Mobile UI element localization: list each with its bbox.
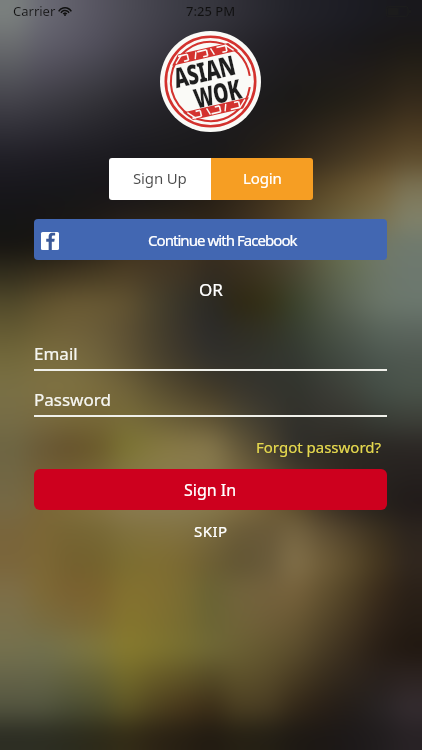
other: Facebook: [41, 232, 59, 250]
staticText: Email: [34, 342, 78, 365]
button[interactable]: Sign Up: [109, 158, 211, 200]
staticText: Forgot password?: [256, 437, 382, 457]
button[interactable]: Sign In: [34, 469, 387, 510]
button[interactable]: Forgot password?: [256, 437, 382, 457]
staticText: ASIAN: [170, 46, 238, 95]
staticText: OR: [199, 278, 223, 301]
staticText: 7:25 PM: [186, 2, 236, 20]
staticText: WOK: [190, 69, 245, 116]
button[interactable]: SKIP: [194, 521, 228, 541]
button[interactable]: Continue with Facebook: [34, 219, 387, 260]
staticText: Sign In: [184, 479, 237, 501]
staticText: Carrier: [13, 2, 56, 20]
staticText: Continue with Facebook: [148, 230, 297, 250]
staticText: Password: [34, 388, 111, 411]
button[interactable]: Login: [211, 158, 313, 200]
staticText: SKIP: [194, 521, 228, 541]
staticText: Sign Up: [133, 168, 187, 188]
staticText: Login: [243, 168, 282, 188]
